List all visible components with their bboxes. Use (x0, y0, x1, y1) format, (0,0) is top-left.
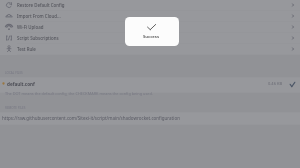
button[interactable]: default.conf (0, 78, 300, 93)
button[interactable]: Restore Default Config (0, 0, 300, 11)
staticText: default.conf (7, 81, 35, 87)
staticText: Success (143, 34, 160, 40)
staticText: REMOTE FILES (5, 106, 26, 110)
staticText: The DOT means the default config, the CH… (5, 91, 153, 96)
staticText: https://raw.githubusercontent.com/Sitexi… (2, 115, 180, 121)
staticText: Script Subscriptions (17, 35, 59, 41)
staticText: Restore Default Config (17, 2, 65, 8)
button[interactable]: Import From Cloud... (0, 11, 300, 22)
staticText: Test Rule (17, 46, 36, 52)
button[interactable]: Test Rule (0, 44, 300, 55)
other: Success (125, 17, 179, 46)
staticText: LOCAL FILES (5, 71, 23, 75)
button[interactable]: Wi-Fi Upload (0, 22, 300, 33)
button[interactable]: https://raw.githubusercontent.com/Sitexi… (0, 113, 300, 125)
button[interactable]: Script Subscriptions (0, 33, 300, 44)
staticText: Import From Cloud... (17, 13, 61, 19)
staticText: Wi-Fi Upload (17, 24, 44, 30)
staticText: 0.46 KB (268, 81, 283, 86)
